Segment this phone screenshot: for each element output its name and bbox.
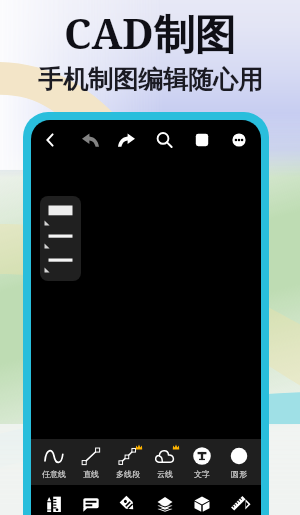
button[interactable]: 3D [183,485,220,515]
staticText: 任意线 [42,469,66,479]
button[interactable]: More options [225,126,253,154]
staticText: 云线 [157,469,173,479]
button[interactable]: 圆形 [220,439,257,485]
button[interactable]: Back [36,126,64,154]
staticText: 文字 [194,469,210,479]
staticText: 多线段 [116,469,140,479]
button[interactable]: Redo [112,126,140,154]
button[interactable]: Layers [146,485,183,515]
button[interactable]: 多线段 [109,439,146,485]
button[interactable]: Ruler [220,485,257,515]
button[interactable]: Tag [109,485,146,515]
button[interactable]: 文字 [183,439,220,485]
button[interactable]: Comment [72,485,109,515]
button[interactable]: Line style [40,196,81,281]
staticText: 直线 [83,469,99,479]
staticText: CAD制图 [64,5,236,61]
button[interactable]: 直线 [72,439,109,485]
staticText: 圆形 [231,469,247,479]
button[interactable]: 云线 [146,439,183,485]
button[interactable]: Undo [77,126,105,154]
button[interactable]: Stop [188,126,216,154]
button[interactable]: 任意线 [35,439,72,485]
button[interactable]: Search [150,126,178,154]
staticText: 手机制图编辑随心用 [38,64,263,95]
button[interactable]: Measure [35,485,72,515]
